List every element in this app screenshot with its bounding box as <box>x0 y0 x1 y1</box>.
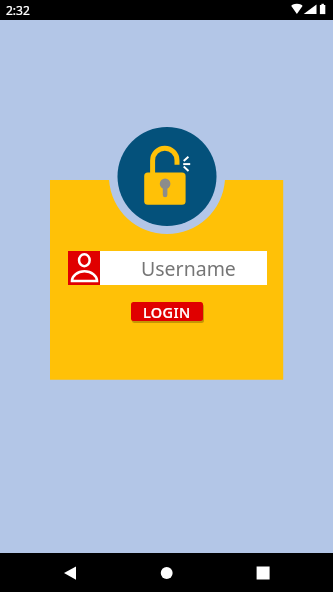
staticText: 2:32 <box>6 2 30 18</box>
button[interactable]: LOGIN <box>131 302 203 321</box>
button[interactable]: Back <box>48 553 92 592</box>
staticText: LOGIN <box>143 302 191 321</box>
button[interactable]: Recents <box>240 553 284 592</box>
staticText: Username <box>141 255 236 282</box>
button[interactable]: Username <box>68 251 267 285</box>
button[interactable]: Home <box>144 553 188 592</box>
